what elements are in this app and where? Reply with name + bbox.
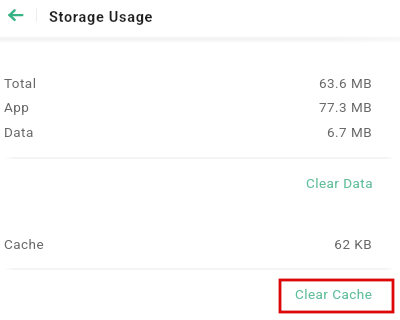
staticText: Total <box>4 75 37 91</box>
staticText: Cache <box>4 236 45 252</box>
staticText: Storage Usage <box>49 9 154 26</box>
button[interactable]: Clear Cache <box>280 280 393 312</box>
staticText: Clear Cache <box>295 286 373 302</box>
staticText: Data <box>4 124 34 140</box>
button[interactable]: Back <box>0 2 30 28</box>
staticText: 77.3 MB <box>318 99 372 115</box>
staticText: 62 KB <box>334 236 372 252</box>
staticText: 63.6 MB <box>318 75 372 91</box>
staticText: App <box>4 99 30 115</box>
button[interactable]: Clear Data <box>296 171 382 195</box>
staticText: Clear Data <box>306 175 373 191</box>
staticText: 6.7 MB <box>327 124 372 140</box>
